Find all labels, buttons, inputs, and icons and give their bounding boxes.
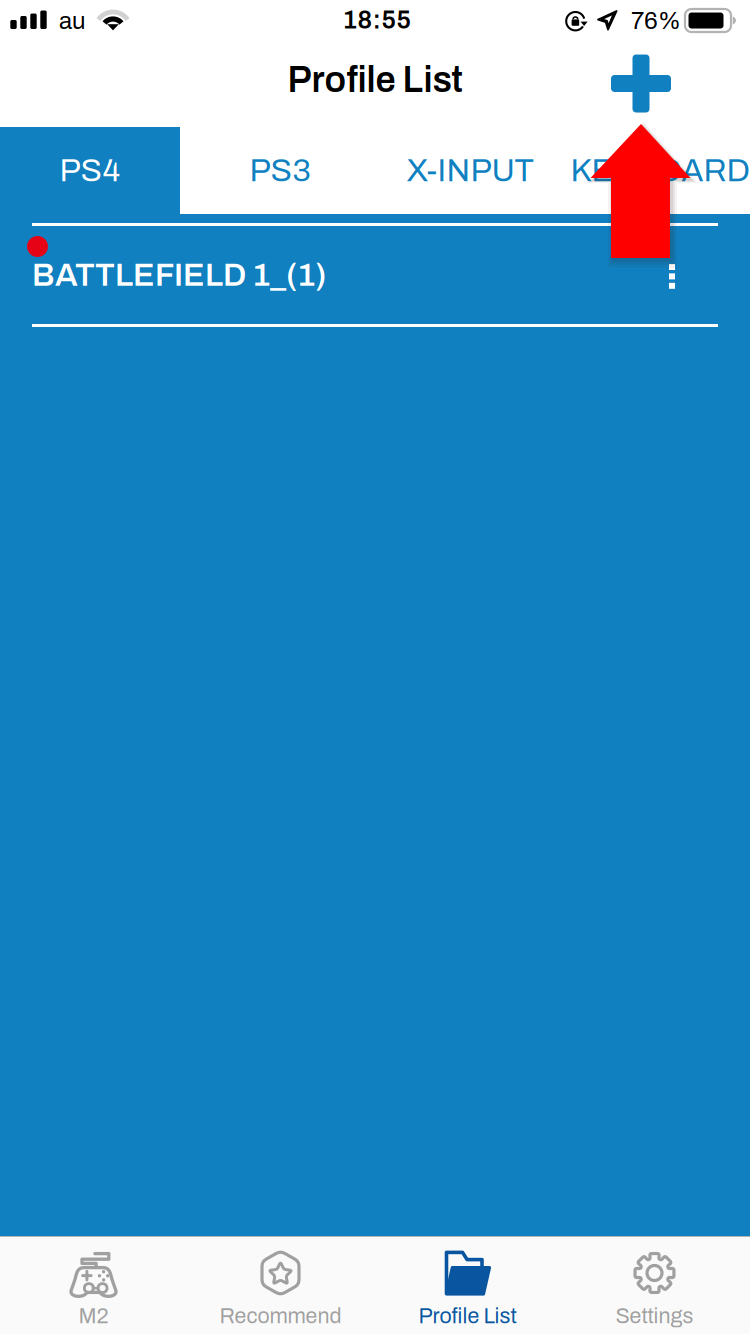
staticText: 18:55 — [342, 6, 411, 34]
staticText: Profile List — [418, 1304, 516, 1328]
staticText: PS4 — [59, 153, 120, 188]
button[interactable]: KEYBOARD — [560, 127, 750, 214]
staticText: Recommend — [219, 1304, 341, 1328]
staticText: Profile List — [287, 60, 462, 100]
button[interactable]: PS3 — [180, 127, 380, 214]
staticText: M2 — [78, 1304, 108, 1328]
button[interactable]: BATTLEFIELD 1_(1) — [0, 223, 750, 327]
staticText: X-INPUT — [406, 153, 533, 188]
button[interactable]: PS4 — [0, 127, 180, 214]
staticText: Settings — [615, 1304, 693, 1328]
staticText: BATTLEFIELD 1_(1) — [32, 258, 326, 292]
button[interactable]: X-INPUT — [380, 127, 560, 214]
button[interactable]: Recommend — [187, 1236, 374, 1334]
staticText: au — [59, 8, 85, 34]
button[interactable]: Add profile — [595, 40, 687, 127]
button[interactable]: Settings — [561, 1236, 748, 1334]
button[interactable]: M2 — [0, 1236, 187, 1334]
staticText: KEYBOARD — [570, 153, 749, 188]
button[interactable]: Profile List — [374, 1236, 561, 1334]
staticText: PS3 — [249, 153, 310, 188]
staticText: 76% — [631, 8, 681, 34]
